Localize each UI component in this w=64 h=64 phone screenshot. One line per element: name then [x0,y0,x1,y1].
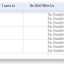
staticText: Healthier [53,44,64,48]
staticText: Stay [48,32,52,36]
staticText: Stay [48,36,52,40]
staticText: Healthier [53,28,64,32]
button[interactable]: Stay [46,40,64,44]
staticText: Healthier [53,24,64,28]
staticText: Stay [48,12,52,16]
button[interactable]: Stay [46,24,64,28]
staticText: Healthier [53,32,64,36]
staticText: Stay [48,44,52,48]
staticText: Healthier [53,36,64,40]
staticText: Healthier [53,16,64,20]
button[interactable]: Stay [46,12,64,16]
button[interactable]: Stay [46,36,64,40]
staticText: Stay [48,48,52,52]
button[interactable]: Stay [46,32,64,36]
staticText: Healthier [53,20,64,24]
button[interactable]: Stay [46,28,64,32]
staticText: Be Well With Us. [30,4,55,8]
button[interactable]: Stay [46,20,64,24]
staticText: Healthier [53,12,64,16]
button[interactable]: Table header [0,0,64,11]
staticText: Stay [48,16,52,20]
button[interactable]: Stay [46,16,64,20]
button[interactable]: Stay [46,48,64,52]
staticText: Stay [48,24,52,28]
staticText: Stay [48,28,52,32]
button[interactable]: Stay [46,44,64,48]
staticText: I want to [2,4,16,8]
staticText: Healthier [53,40,64,44]
staticText: Stay [48,20,52,24]
staticText: Healthier [53,48,64,52]
staticText: Stay [48,40,52,44]
